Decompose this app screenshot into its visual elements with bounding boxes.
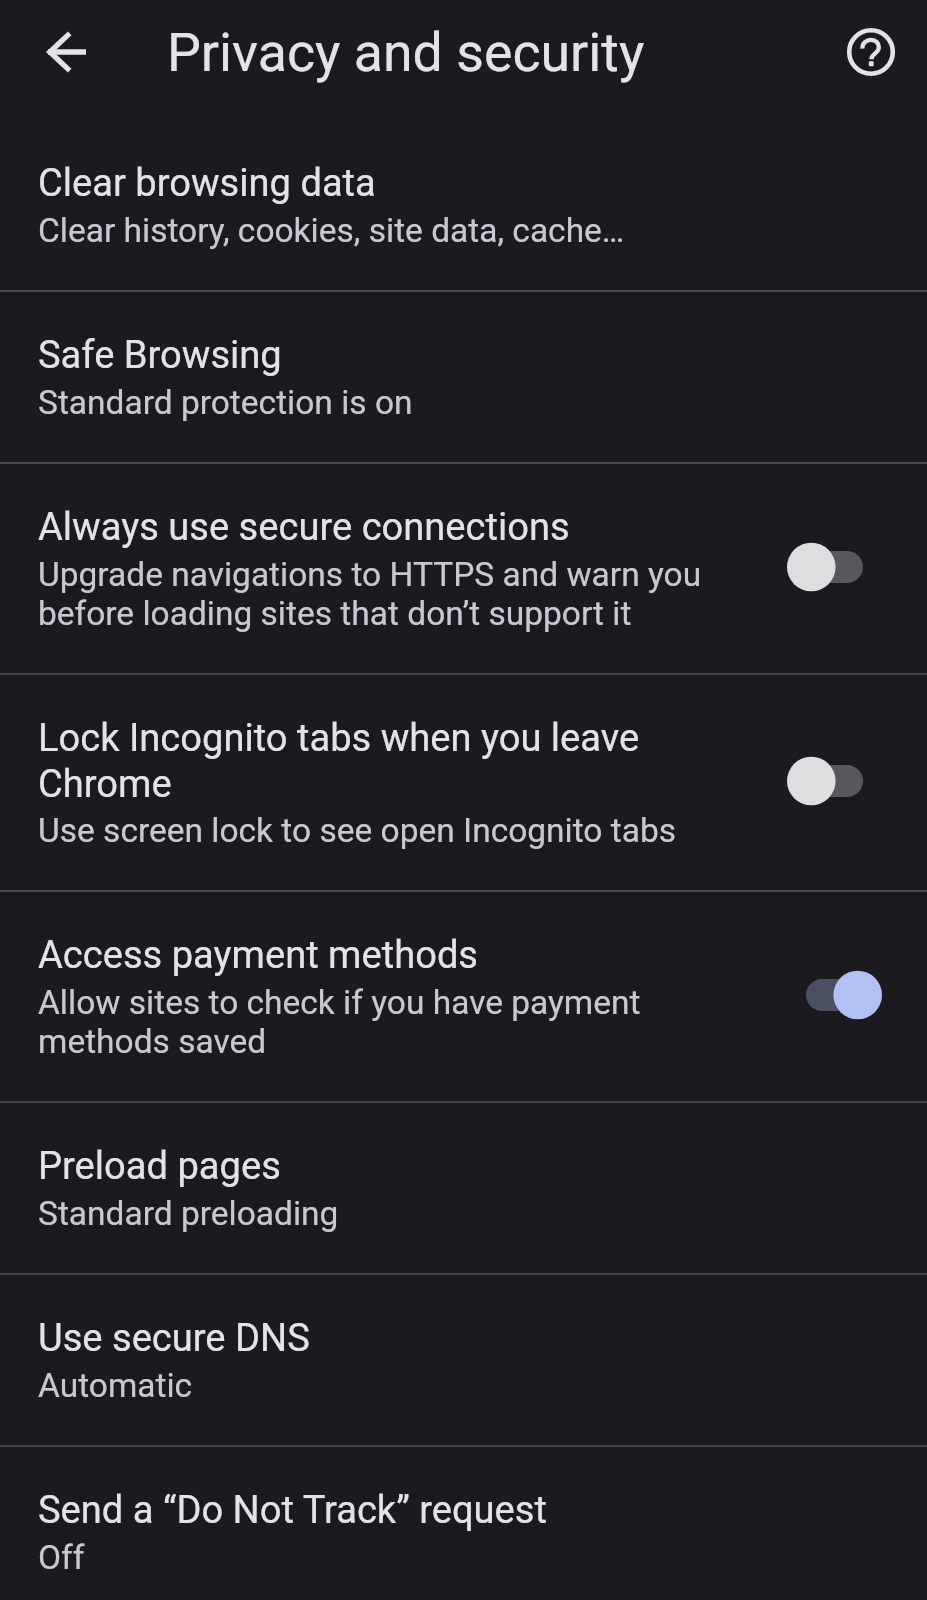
button[interactable]: Safe Browsing (0, 292, 927, 462)
staticText: Send a “Do Not Track” request (38, 1488, 547, 1533)
button[interactable]: Always use secure connections (0, 464, 927, 673)
staticText: Access payment methods (38, 933, 479, 978)
staticText: Privacy and security (167, 21, 645, 84)
button[interactable]: Send a “Do Not Track” request (0, 1447, 927, 1600)
staticText: Use secure DNS (38, 1316, 310, 1361)
button[interactable]: Access payment methods (0, 892, 927, 1101)
button[interactable]: Clear browsing data (0, 120, 927, 290)
staticText: Use screen lock to see open Incognito ta… (38, 811, 677, 850)
button[interactable]: Help (815, 0, 927, 104)
button[interactable]: Preload pages (0, 1103, 927, 1273)
staticText: Lock Incognito tabs when you leave Chrom… (38, 716, 747, 806)
button[interactable]: Lock Incognito tabs when you leave Chrom… (0, 675, 927, 890)
staticText: Standard preloading (38, 1194, 339, 1233)
button[interactable]: Switch off (787, 524, 903, 610)
staticText: Clear history, cookies, site data, cache… (38, 211, 625, 250)
button[interactable]: Use secure DNS (0, 1275, 927, 1445)
staticText: Safe Browsing (38, 333, 282, 378)
staticText: Allow sites to check if you have payment… (38, 983, 747, 1061)
staticText: Off (38, 1538, 85, 1577)
button[interactable]: Switch on (787, 952, 903, 1038)
staticText: Always use secure connections (38, 505, 570, 550)
button[interactable]: Back (0, 0, 133, 104)
staticText: Standard protection is on (38, 383, 413, 422)
staticText: Clear browsing data (38, 161, 376, 206)
button[interactable]: Switch off (787, 738, 903, 824)
staticText: Automatic (38, 1366, 193, 1405)
staticText: Upgrade navigations to HTTPS and warn yo… (38, 555, 747, 633)
staticText: Preload pages (38, 1144, 281, 1189)
